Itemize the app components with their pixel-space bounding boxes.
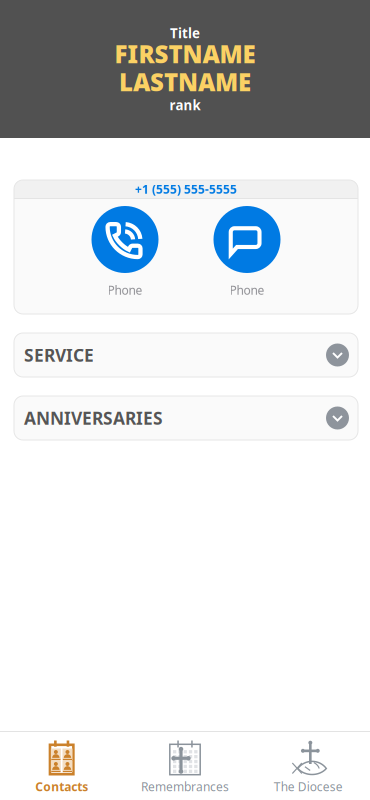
staticText: LASTNAME (119, 66, 251, 98)
staticText: SERVICE (24, 343, 94, 366)
staticText: Phone (107, 282, 142, 298)
staticText: Title (170, 24, 200, 42)
staticText: rank (169, 96, 200, 114)
staticText: Phone (229, 282, 264, 298)
staticText: +1 (555) 555-5555 (135, 181, 237, 197)
staticText: Remembrances (141, 778, 229, 794)
button[interactable]: The Diocese (247, 731, 370, 800)
button[interactable]: Remembrances (123, 731, 247, 800)
staticText: FIRSTNAME (114, 38, 255, 70)
button[interactable]: +1 (555) 555-5555 (14, 180, 358, 198)
staticText: Contacts (35, 778, 88, 794)
button[interactable]: Contacts (0, 731, 123, 800)
staticText: The Diocese (274, 778, 343, 794)
button[interactable]: SERVICE (14, 333, 358, 377)
button[interactable]: Call (91, 206, 158, 273)
button[interactable]: ANNIVERSARIES (14, 396, 358, 440)
button[interactable]: Message (213, 206, 280, 273)
staticText: ANNIVERSARIES (24, 406, 163, 429)
